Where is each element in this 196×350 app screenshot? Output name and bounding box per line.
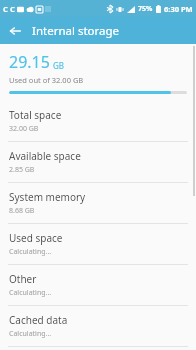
staticText: 8.68 GB <box>9 206 35 216</box>
staticText: Calculating... <box>9 329 52 339</box>
staticText: C <box>3 4 8 14</box>
staticText: C <box>10 4 15 14</box>
button[interactable]: Back <box>4 20 26 42</box>
staticText: Internal storage <box>32 23 120 39</box>
staticText: Available space <box>9 149 81 163</box>
staticText: Calculating... <box>9 247 52 257</box>
staticText: Used out of 32.00 GB <box>9 75 84 85</box>
staticText: GB <box>53 60 65 71</box>
staticText: Calculating... <box>9 288 52 298</box>
staticText: 6:30 PM <box>164 4 193 14</box>
staticText: 2.85 GB <box>9 165 35 175</box>
staticText: Other <box>9 272 37 286</box>
button[interactable]: Other <box>0 265 196 305</box>
button[interactable]: Available space <box>0 142 196 182</box>
staticText: Used space <box>9 231 63 245</box>
staticText: 29.15 <box>9 51 50 73</box>
button[interactable]: Used space <box>0 224 196 264</box>
staticText: 32.00 GB <box>9 124 39 134</box>
staticText: System memory <box>9 190 86 204</box>
staticText: Cached data <box>9 313 68 327</box>
button[interactable]: Total space <box>0 101 196 141</box>
button[interactable]: Cached data <box>0 306 196 346</box>
staticText: 75% <box>138 4 153 14</box>
staticText: Total space <box>9 108 62 122</box>
button[interactable]: System memory <box>0 183 196 223</box>
